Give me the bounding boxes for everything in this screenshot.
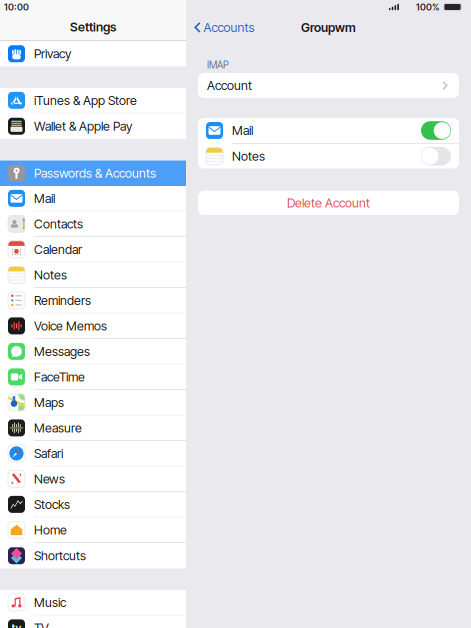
button[interactable]: Stocks — [0, 492, 186, 517]
staticText: Music — [34, 595, 66, 610]
button[interactable]: Privacy — [0, 41, 186, 66]
staticText: 10:00 — [4, 1, 29, 13]
staticText: Groupwm — [301, 20, 356, 35]
staticText: Stocks — [34, 497, 70, 512]
staticText: Voice Memos — [34, 318, 107, 333]
staticText: Measure — [34, 420, 82, 435]
button[interactable]: iTunes & App Store — [0, 88, 186, 113]
button[interactable]: Delete Account — [198, 191, 459, 215]
button[interactable]: Accounts — [186, 14, 255, 41]
button[interactable]: Maps — [0, 390, 186, 415]
staticText: Notes — [34, 267, 67, 282]
staticText: Reminders — [34, 293, 91, 308]
staticText: Contacts — [34, 216, 83, 231]
staticText: Notes — [232, 149, 265, 164]
button[interactable]: tv — [0, 615, 186, 628]
button[interactable]: Mail — [198, 118, 459, 143]
button[interactable]: Wallet & Apple Pay — [0, 113, 186, 139]
button[interactable]: Reminders — [0, 288, 186, 313]
button[interactable]: Messages — [0, 339, 186, 364]
button[interactable]: Measure — [0, 415, 186, 441]
button[interactable]: FaceTime — [0, 364, 186, 390]
button[interactable]: Calendar — [0, 237, 186, 262]
staticText: IMAP — [207, 59, 229, 71]
staticText: 100% — [416, 1, 440, 13]
staticText: TV — [34, 620, 49, 628]
staticText: Wallet & Apple Pay — [34, 119, 132, 134]
button[interactable]: Music — [0, 590, 186, 615]
button[interactable]: Voice Memos — [0, 313, 186, 339]
staticText: FaceTime — [34, 369, 85, 384]
button[interactable]: Home — [0, 517, 186, 543]
staticText: Account — [207, 78, 252, 93]
button[interactable]: Notes — [0, 262, 186, 288]
staticText: Safari — [34, 446, 63, 461]
button[interactable]: Passwords & Accounts — [0, 160, 186, 186]
staticText: Messages — [34, 344, 90, 359]
button[interactable]: Contacts — [0, 211, 186, 237]
staticText: Delete Account — [287, 195, 370, 211]
staticText: Accounts — [204, 20, 255, 35]
staticText: News — [34, 471, 65, 486]
button[interactable]: Notes — [198, 144, 459, 169]
button[interactable]: Account — [198, 73, 459, 98]
staticText: Home — [34, 522, 67, 537]
staticText: Shortcuts — [34, 548, 86, 563]
staticText: iTunes & App Store — [34, 93, 137, 108]
staticText: Mail — [232, 123, 253, 138]
button[interactable]: Shortcuts — [0, 543, 186, 568]
staticText: Maps — [34, 395, 64, 410]
staticText: Calendar — [34, 242, 82, 257]
button[interactable]: News — [0, 466, 186, 492]
staticText: Privacy — [34, 46, 71, 61]
staticText: Passwords & Accounts — [34, 166, 156, 181]
button[interactable]: Safari — [0, 441, 186, 466]
staticText: Settings — [70, 19, 116, 34]
staticText: tv — [11, 621, 21, 628]
button[interactable]: Mail — [0, 186, 186, 211]
staticText: Mail — [34, 191, 55, 206]
